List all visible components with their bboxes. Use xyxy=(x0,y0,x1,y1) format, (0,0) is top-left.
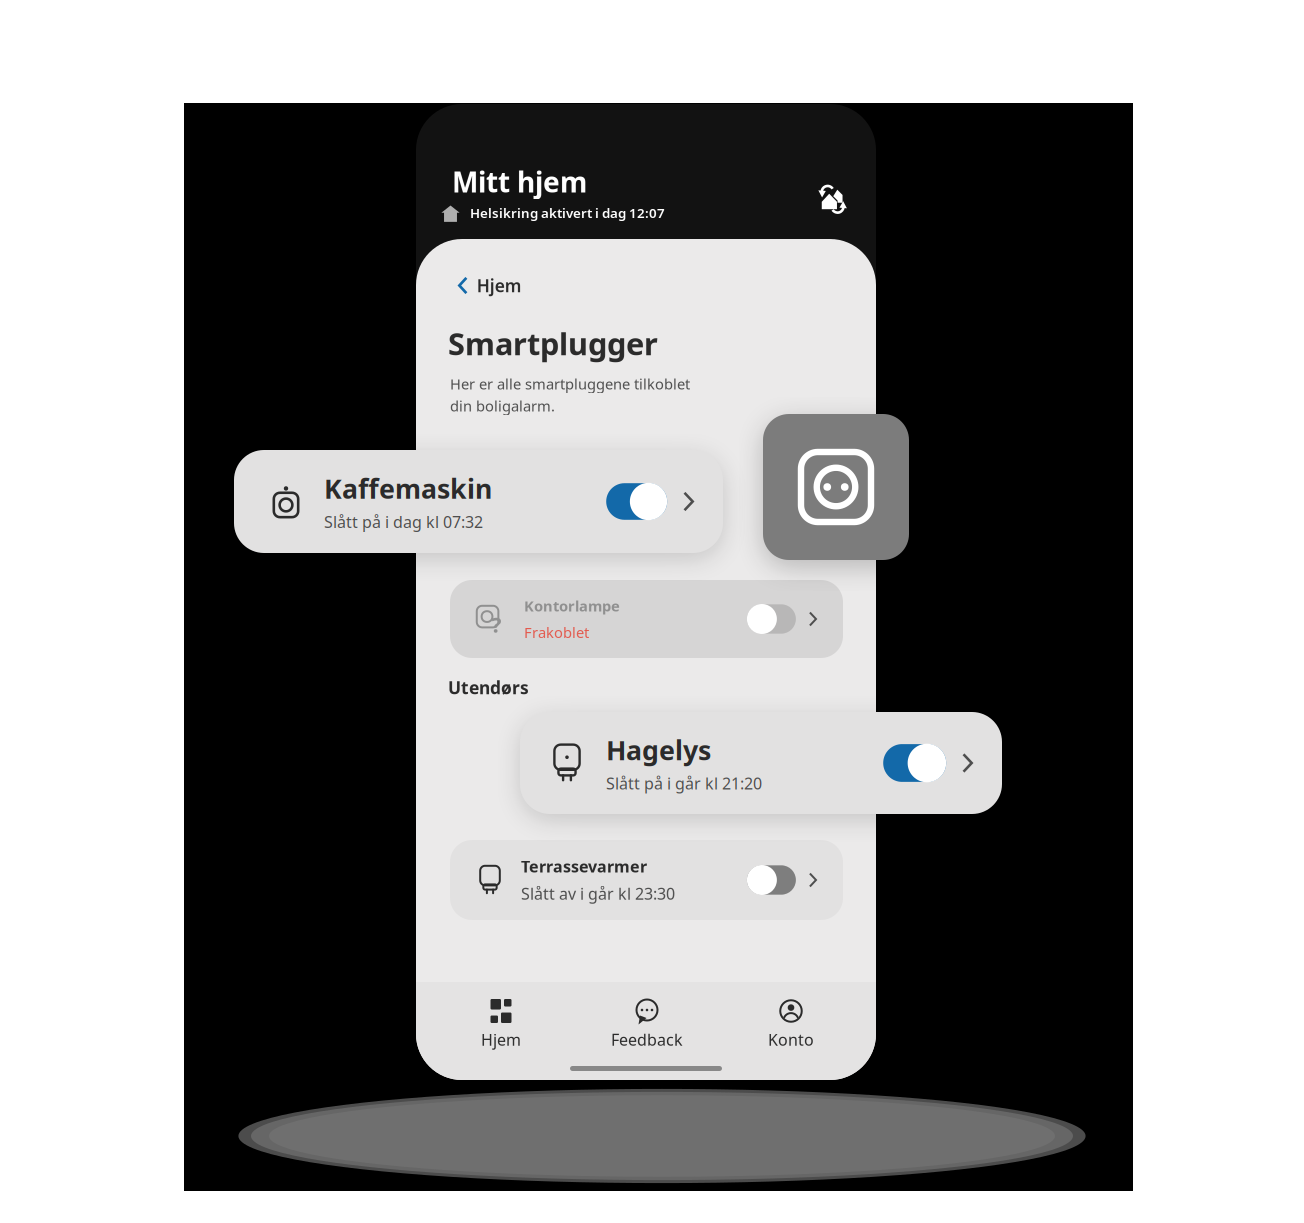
button[interactable]: Terrassevarmer xyxy=(450,840,843,920)
staticText: Utendørs xyxy=(448,676,529,699)
staticText: Terrassevarmer xyxy=(521,856,647,877)
button[interactable]: Hagelys xyxy=(520,712,1002,814)
button[interactable]: ? xyxy=(450,580,843,658)
staticText: Smartplugger xyxy=(448,323,658,364)
staticText: Hagelys xyxy=(606,732,711,768)
staticText: Frakoblet xyxy=(524,622,589,642)
button[interactable]: Feedback xyxy=(592,995,702,1053)
button[interactable]: Konto xyxy=(736,995,846,1053)
staticText: Kontorlampe xyxy=(524,596,620,615)
staticText: Slått på i dag kl 07:32 xyxy=(324,511,483,532)
staticText: Slått av i går kl 23:30 xyxy=(521,883,675,904)
staticText: Her er alle smartpluggene tilkoblet xyxy=(450,374,690,393)
staticText: ? xyxy=(491,610,501,638)
staticText: Kaffemaskin xyxy=(324,471,492,506)
button[interactable]: Hjem xyxy=(446,995,556,1053)
staticText: Hjem xyxy=(481,1029,521,1050)
button[interactable]: Switch home xyxy=(811,178,853,220)
staticText: Mitt hjem xyxy=(452,163,587,200)
staticText: Helsikring aktivert i dag 12:07 xyxy=(470,204,665,222)
staticText: Konto xyxy=(768,1029,814,1050)
staticText: Hjem xyxy=(477,274,522,297)
staticText: din boligalarm. xyxy=(450,396,555,415)
button[interactable]: Kaffemaskin xyxy=(234,450,723,553)
button[interactable]: Hjem xyxy=(449,267,531,304)
staticText: Feedback xyxy=(611,1029,683,1050)
staticText: Slått på i går kl 21:20 xyxy=(606,773,762,794)
